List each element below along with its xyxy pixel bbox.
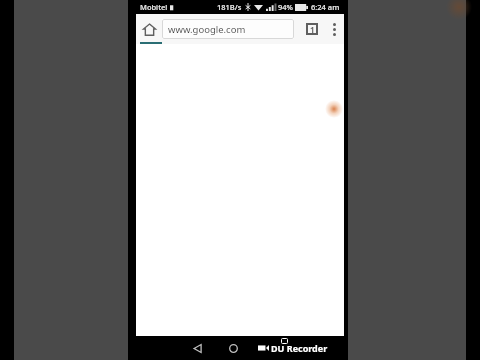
staticText: 181B/s [217, 2, 242, 12]
button[interactable]: Home [222, 337, 244, 359]
button[interactable]: www.google.com [162, 19, 294, 39]
staticText: DU Recorder [271, 342, 328, 354]
button[interactable]: Home [136, 14, 162, 44]
staticText: 94% [278, 2, 293, 12]
staticText: 6:24 am [311, 2, 340, 12]
button[interactable]: Tabs [300, 14, 324, 44]
staticText: www.google.com [168, 23, 246, 36]
staticText: 1 [310, 24, 315, 35]
button[interactable]: Back [186, 337, 208, 359]
staticText: Mobitel [140, 2, 168, 12]
button[interactable]: More options [324, 14, 344, 44]
